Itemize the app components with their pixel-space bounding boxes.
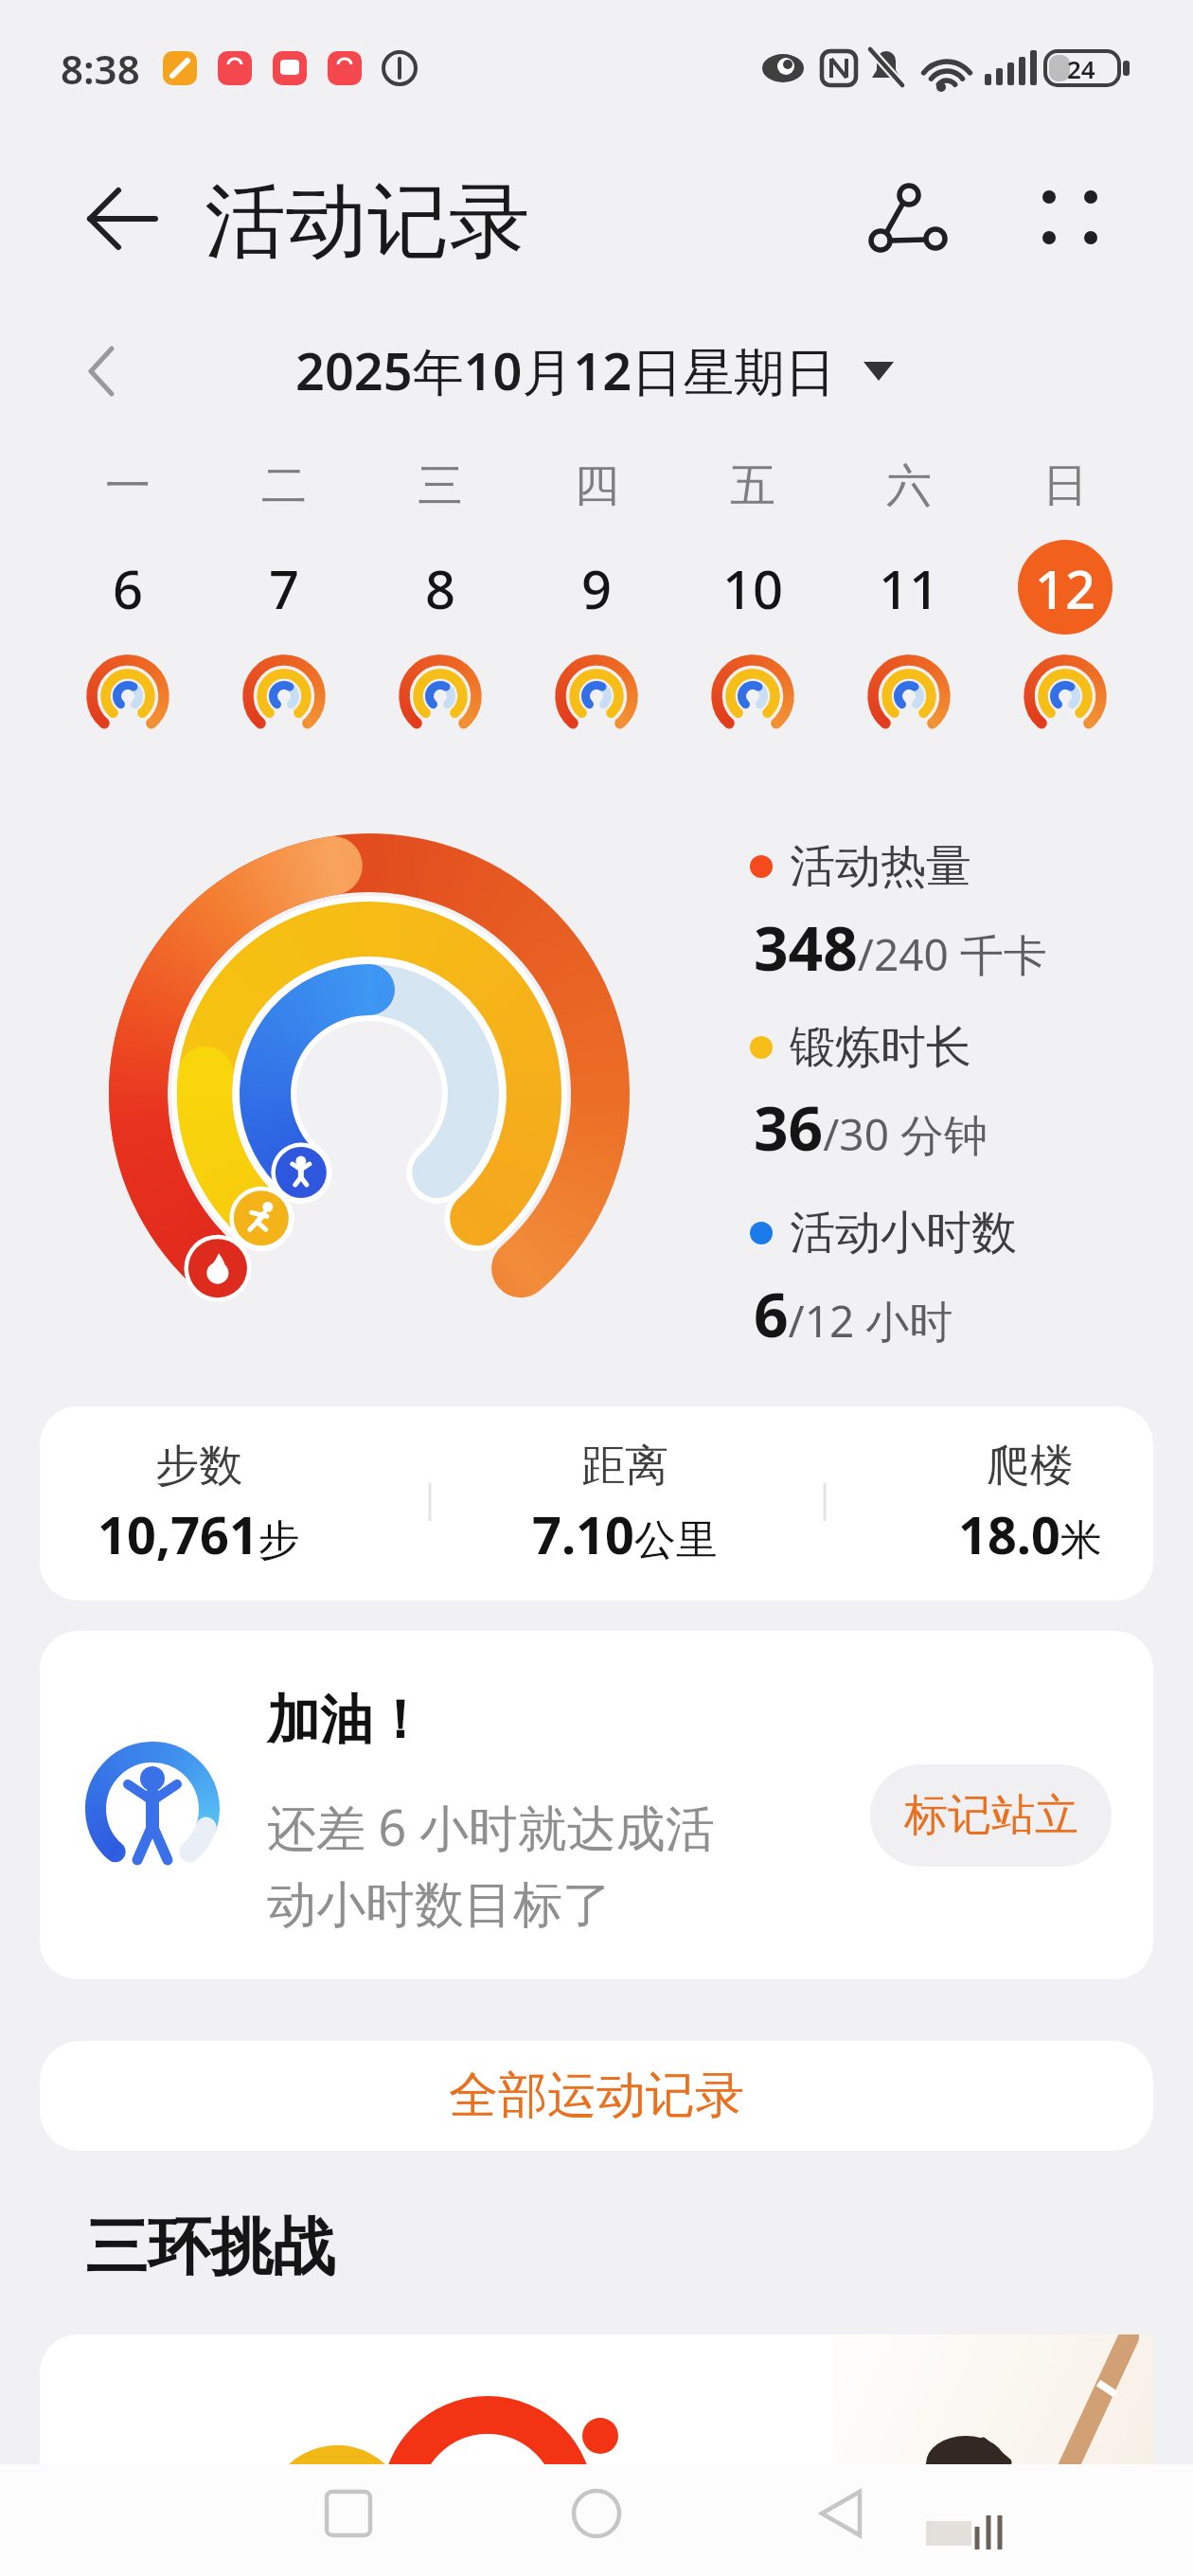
button[interactable] bbox=[372, 530, 508, 758]
button[interactable] bbox=[74, 182, 159, 258]
staticText: 锻炼时长 bbox=[790, 1019, 971, 1076]
staticText: 标记站立 bbox=[904, 1788, 1078, 1843]
button[interactable] bbox=[685, 530, 821, 758]
staticText: 10 bbox=[722, 552, 784, 624]
staticText: 六 bbox=[886, 457, 932, 514]
staticText: 348/240 千卡 bbox=[754, 906, 1047, 989]
button[interactable] bbox=[781, 2474, 904, 2568]
staticText: 步数 bbox=[155, 1439, 242, 1494]
button[interactable] bbox=[841, 530, 977, 758]
staticText: 8:38 bbox=[61, 42, 140, 96]
staticText: 五 bbox=[730, 457, 775, 514]
staticText: 一 bbox=[105, 457, 151, 514]
button[interactable] bbox=[1027, 175, 1117, 265]
button[interactable] bbox=[997, 530, 1133, 758]
button[interactable] bbox=[227, 333, 909, 409]
staticText: 24 bbox=[1067, 52, 1095, 85]
button[interactable] bbox=[216, 530, 352, 758]
staticText: 6/12 小时 bbox=[754, 1273, 953, 1355]
staticText: 二 bbox=[261, 457, 307, 514]
staticText: 9 bbox=[581, 552, 613, 624]
staticText: 18.0米 bbox=[958, 1499, 1102, 1569]
button[interactable]: 全部运动记录 bbox=[40, 2041, 1153, 2151]
staticText: 四 bbox=[574, 457, 619, 514]
button[interactable] bbox=[40, 1631, 1153, 1979]
button[interactable] bbox=[284, 2474, 407, 2568]
staticText: 活动热量 bbox=[790, 838, 971, 895]
staticText: 还差 6 小时就达成活 bbox=[267, 1793, 715, 1860]
staticText: 6 bbox=[113, 552, 144, 624]
button[interactable] bbox=[528, 530, 665, 758]
staticText: 日 bbox=[1042, 457, 1088, 514]
button[interactable] bbox=[40, 1406, 1153, 1601]
staticText: 爬楼 bbox=[987, 1439, 1074, 1494]
staticText: 加油！ bbox=[267, 1687, 426, 1754]
staticText: 活动记录 bbox=[205, 170, 530, 273]
button[interactable] bbox=[866, 175, 956, 265]
staticText: 12 bbox=[1035, 552, 1096, 624]
staticText: 三环挑战 bbox=[85, 2208, 335, 2286]
button[interactable] bbox=[40, 2334, 1153, 2464]
button[interactable] bbox=[60, 530, 196, 758]
staticText: 全部运动记录 bbox=[449, 2065, 744, 2127]
button[interactable] bbox=[535, 2474, 658, 2568]
staticText: 距离 bbox=[581, 1439, 668, 1494]
staticText: 8 bbox=[425, 552, 456, 624]
staticText: 36/30 分钟 bbox=[754, 1086, 988, 1169]
staticText: 2025年10月12日星期日 bbox=[295, 335, 837, 405]
staticText: 活动小时数 bbox=[790, 1205, 1017, 1261]
staticText: 10,761步 bbox=[98, 1499, 300, 1569]
staticText: 11 bbox=[879, 552, 940, 624]
button[interactable] bbox=[57, 333, 142, 409]
staticText: 7 bbox=[269, 552, 300, 624]
button[interactable]: 标记站立 bbox=[870, 1764, 1112, 1867]
staticText: 动小时数目标了 bbox=[267, 1874, 612, 1937]
staticText: 三 bbox=[418, 457, 463, 514]
staticText: 7.10公里 bbox=[532, 1499, 718, 1569]
